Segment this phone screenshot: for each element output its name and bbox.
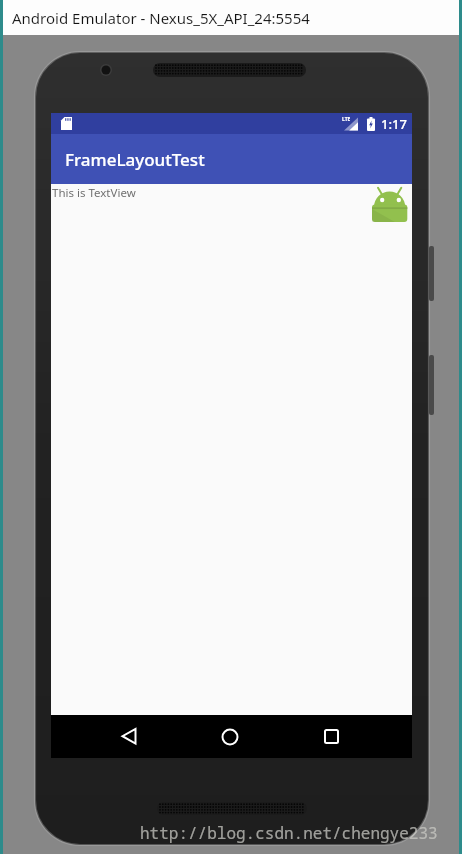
staticText: 1:17 (381, 115, 407, 133)
staticText: FrameLayoutTest (65, 148, 205, 171)
button[interactable] (221, 728, 239, 746)
button[interactable] (324, 729, 339, 744)
staticText: LTE (342, 116, 351, 123)
button[interactable]: FrameLayoutTest (51, 134, 412, 184)
button[interactable]: Android Emulator - Nexus_5X_API_24:5554 (0, 0, 462, 35)
staticText: Android Emulator - Nexus_5X_API_24:5554 (12, 8, 310, 28)
staticText: This is TextView (52, 185, 136, 201)
button[interactable] (121, 728, 137, 745)
staticText: http://blog.csdn.net/chengye233 (140, 822, 438, 844)
button[interactable] (371, 187, 408, 223)
